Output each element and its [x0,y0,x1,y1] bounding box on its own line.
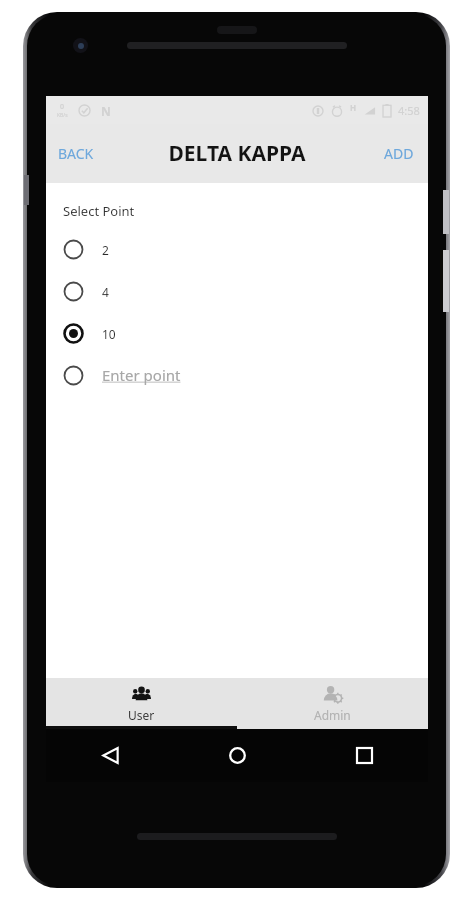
staticText: ADD [384,144,414,163]
button[interactable]: 2 [63,239,428,260]
staticText: 0 [60,102,65,112]
staticText: 4:58 [398,103,420,118]
staticText: DELTA KAPPA [168,139,306,168]
staticText: N [101,103,111,119]
button[interactable]: Admin [237,678,428,729]
button[interactable]: Enter point [63,362,428,388]
staticText: 4 [102,284,109,300]
button[interactable]: BACK [46,124,106,183]
button[interactable]: 4 [63,281,428,302]
staticText: H [350,102,357,113]
staticText: 10 [102,326,116,342]
staticText: KB/s [57,112,68,119]
staticText: BACK [58,144,94,163]
staticText: Admin [314,707,351,723]
button[interactable]: Recent apps [301,729,428,782]
staticText: Enter point [102,365,181,385]
button[interactable]: ADD [370,124,428,183]
staticText: Select Point [63,202,135,220]
staticText: User [128,707,155,723]
staticText: 2 [102,242,109,258]
button[interactable]: Back [46,729,174,782]
button[interactable]: 10 [63,323,428,344]
button[interactable]: Home [174,729,301,782]
button[interactable]: User [46,678,237,729]
